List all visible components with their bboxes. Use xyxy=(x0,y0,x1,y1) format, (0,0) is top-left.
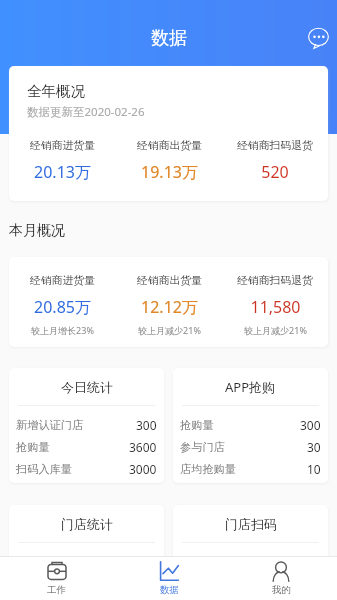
button[interactable]: 我的 xyxy=(225,557,337,600)
staticText: 全年概况 xyxy=(27,82,85,100)
staticText: 我的 xyxy=(272,584,291,596)
staticText: 经销商扫码退货 xyxy=(237,139,313,153)
button[interactable]: Messages xyxy=(302,21,334,53)
staticText: 抢购量 xyxy=(180,418,214,432)
staticText: 工作 xyxy=(47,584,66,596)
staticText: 门店扫码 xyxy=(225,516,277,532)
staticText: 520 xyxy=(261,161,289,183)
staticText: 30 xyxy=(307,439,321,455)
staticText: 较上月增长23% xyxy=(31,324,94,336)
staticText: 经销商扫码退货 xyxy=(237,274,313,288)
staticText: 数据 xyxy=(160,584,179,596)
staticText: 数据 xyxy=(151,27,187,50)
staticText: 300 xyxy=(136,417,157,433)
button[interactable]: 工作 xyxy=(0,557,113,600)
staticText: 今日统计 xyxy=(61,379,113,395)
staticText: 3000 xyxy=(129,461,157,477)
staticText: 300 xyxy=(300,417,321,433)
staticText: 扫码入库量 xyxy=(16,462,72,476)
staticText: 本月概况 xyxy=(9,222,65,240)
staticText: 19.13万 xyxy=(141,161,198,183)
staticText: 较上月减少21% xyxy=(138,324,201,336)
staticText: 门店统计 xyxy=(61,516,113,532)
staticText: 较上月减少21% xyxy=(244,324,307,336)
staticText: 20.85万 xyxy=(34,296,91,318)
staticText: 3600 xyxy=(129,439,157,455)
staticText: 新增认证门店 xyxy=(16,418,84,432)
staticText: 抢购量 xyxy=(16,440,50,454)
staticText: 经销商进货量 xyxy=(30,274,95,288)
staticText: 经销商出货量 xyxy=(137,274,202,288)
staticText: APP抢购 xyxy=(225,378,276,396)
staticText: 店均抢购量 xyxy=(180,462,236,476)
staticText: 经销商进货量 xyxy=(30,139,95,153)
staticText: 10 xyxy=(307,461,321,477)
button[interactable]: 数据 xyxy=(113,557,225,600)
staticText: 11,580 xyxy=(250,296,301,318)
staticText: 参与门店 xyxy=(180,440,225,454)
staticText: 经销商出货量 xyxy=(137,139,202,153)
staticText: 数据更新至2020-02-26 xyxy=(27,104,145,120)
staticText: 20.13万 xyxy=(34,161,91,183)
staticText: 12.12万 xyxy=(141,296,198,318)
